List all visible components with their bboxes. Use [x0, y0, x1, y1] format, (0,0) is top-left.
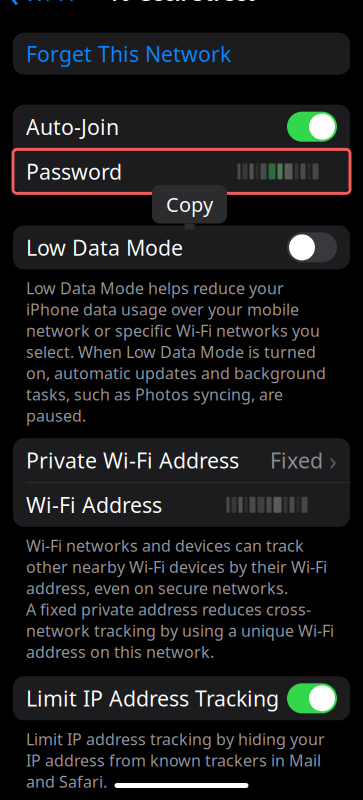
- staticText: Copy: [166, 191, 213, 218]
- button[interactable]: Wi-Fi Address: [13, 483, 350, 527]
- staticText: Limit IP Address Tracking: [26, 684, 279, 712]
- staticText: Low Data Mode helps reduce your iPhone d…: [26, 277, 326, 426]
- button[interactable]: Forget This Network: [13, 33, 350, 75]
- staticText: Fixed: [270, 446, 323, 474]
- staticText: Low Data Mode: [26, 233, 183, 261]
- staticText: ‹: [8, 0, 20, 17]
- button[interactable]: ‹: [0, 0, 75, 21]
- staticText: Private Wi-Fi Address: [26, 446, 239, 474]
- staticText: Wi-Fi networks and devices can track oth…: [26, 535, 334, 662]
- staticText: Limit IP address tracking by hiding your…: [26, 728, 325, 792]
- staticText: ›: [329, 443, 337, 477]
- staticText: Wi-Fi: [25, 0, 75, 7]
- staticText: Auto-Join: [26, 112, 119, 141]
- button[interactable]: Low Data Mode: [13, 225, 350, 269]
- staticText: Wi-Fi Address: [26, 491, 162, 519]
- staticText: Forget This Network: [26, 39, 231, 68]
- button[interactable]: Limit IP Address Tracking: [13, 676, 350, 720]
- staticText: Password: [26, 157, 122, 185]
- staticText: 10 Cecil Street: [107, 0, 255, 7]
- button[interactable]: Private Wi-Fi Address: [13, 438, 350, 482]
- button[interactable]: Auto-Join: [13, 105, 350, 149]
- button[interactable]: Password: [13, 149, 350, 193]
